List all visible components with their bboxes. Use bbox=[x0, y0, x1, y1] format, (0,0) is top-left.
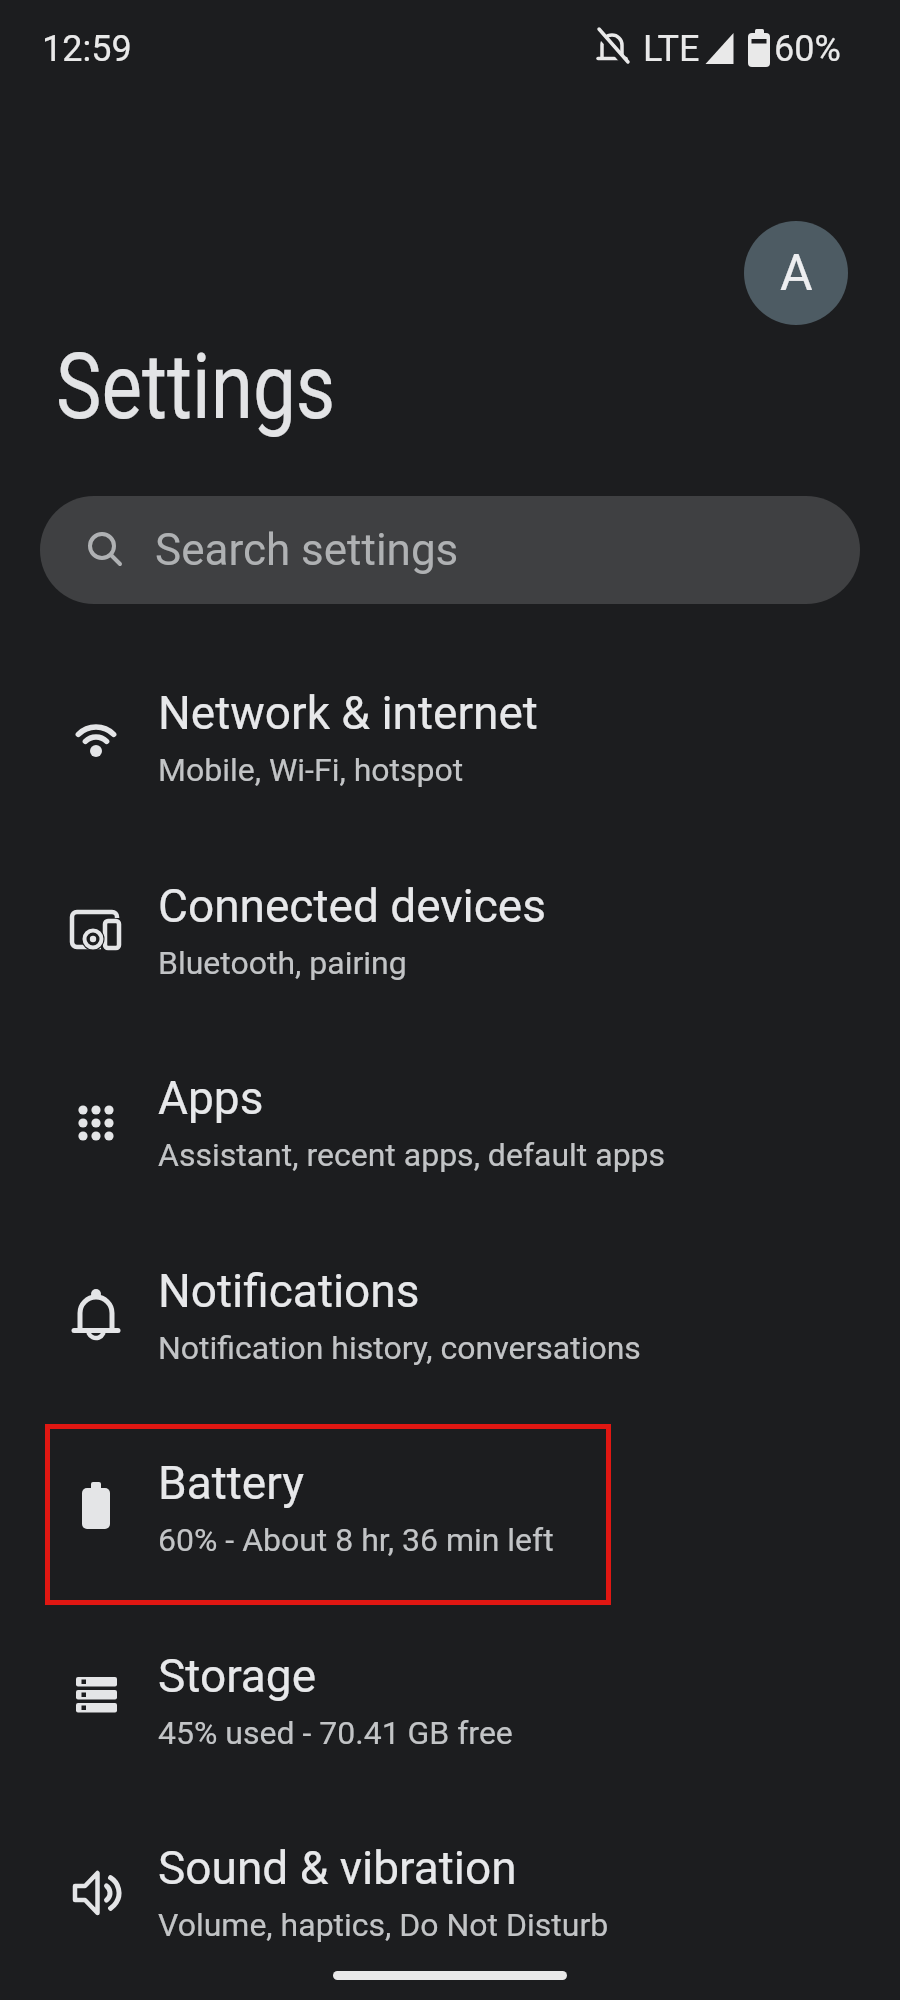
staticText: A bbox=[780, 244, 813, 303]
button[interactable]: Apps bbox=[0, 1030, 900, 1222]
staticText: 60% bbox=[774, 28, 841, 70]
staticText: Storage bbox=[158, 1649, 317, 1703]
button[interactable]: Sound & vibration bbox=[0, 1800, 900, 1992]
staticText: Bluetooth, pairing bbox=[158, 944, 407, 982]
staticText: Connected devices bbox=[158, 879, 546, 933]
button[interactable]: Search settings bbox=[40, 496, 860, 604]
staticText: Mobile, Wi-Fi, hotspot bbox=[158, 751, 464, 789]
button[interactable]: Connected devices bbox=[0, 838, 900, 1030]
button[interactable]: Network & internet bbox=[0, 645, 900, 837]
staticText: Sound & vibration bbox=[158, 1841, 517, 1895]
button[interactable]: A bbox=[744, 221, 848, 325]
staticText: Apps bbox=[158, 1071, 264, 1125]
staticText: 45% used - 70.41 GB free bbox=[158, 1714, 513, 1752]
staticText: Notification history, conversations bbox=[158, 1329, 641, 1367]
staticText: Network & internet bbox=[158, 686, 538, 740]
staticText: 60% - About 8 hr, 36 min left bbox=[158, 1521, 554, 1559]
staticText: Assistant, recent apps, default apps bbox=[158, 1136, 666, 1174]
staticText: Settings bbox=[56, 335, 336, 440]
staticText: Volume, haptics, Do Not Disturb bbox=[158, 1906, 609, 1944]
button[interactable]: Battery bbox=[0, 1415, 900, 1607]
staticText: Search settings bbox=[155, 524, 459, 576]
staticText: 12:59 bbox=[42, 28, 132, 70]
button[interactable]: Notifications bbox=[0, 1223, 900, 1415]
staticText: Notifications bbox=[158, 1264, 420, 1318]
staticText: LTE bbox=[643, 28, 700, 70]
staticText: Battery bbox=[158, 1456, 304, 1510]
button[interactable]: Storage bbox=[0, 1608, 900, 1800]
